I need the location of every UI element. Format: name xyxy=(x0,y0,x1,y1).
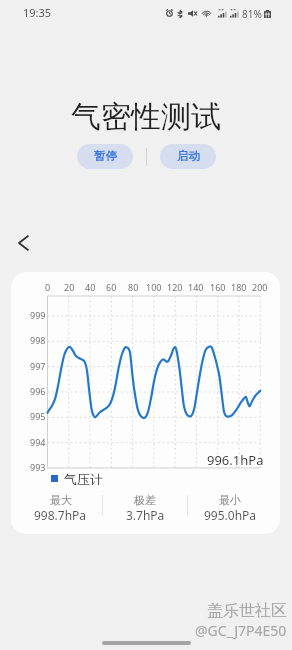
staticText: 200 xyxy=(252,281,268,293)
staticText: 100 xyxy=(146,281,162,293)
staticText: 40 xyxy=(85,281,96,293)
staticText: 120 xyxy=(167,281,183,293)
staticText: 80 xyxy=(128,281,139,293)
button[interactable]: Back xyxy=(7,227,39,259)
staticText: 995 xyxy=(30,410,46,422)
staticText: 气密性测试 xyxy=(0,98,292,136)
staticText: 999 xyxy=(30,309,46,321)
staticText: 996 xyxy=(30,385,46,397)
staticText: 气压计 xyxy=(64,471,103,485)
staticText: 993 xyxy=(30,461,46,473)
staticText: 140 xyxy=(188,281,204,293)
staticText: 997 xyxy=(30,360,46,372)
staticText: 20 xyxy=(64,281,75,293)
staticText: 60 xyxy=(106,281,117,293)
staticText: 995.0hPa xyxy=(204,507,257,523)
staticText: 最大 xyxy=(50,493,72,507)
staticText: 998.7hPa xyxy=(34,507,87,523)
staticText: 启动 xyxy=(177,149,200,163)
button[interactable]: 启动 xyxy=(160,144,216,169)
staticText: 盖乐世社区 xyxy=(207,601,287,621)
staticText: 3.7hPa xyxy=(126,507,165,523)
staticText: 极差 xyxy=(134,493,156,507)
staticText: 998 xyxy=(30,334,46,346)
staticText: 暂停 xyxy=(94,149,117,163)
staticText: 19:35 xyxy=(23,5,52,20)
staticText: @GC_J7P4E50 xyxy=(195,621,287,640)
staticText: 180 xyxy=(231,281,247,293)
staticText: 0 xyxy=(45,281,51,293)
staticText: 81% xyxy=(242,7,262,21)
staticText: 最小 xyxy=(219,493,241,507)
staticText: 160 xyxy=(210,281,226,293)
staticText: 996.1hPa xyxy=(207,451,264,469)
button[interactable]: 暂停 xyxy=(77,144,133,169)
staticText: 994 xyxy=(30,436,46,448)
